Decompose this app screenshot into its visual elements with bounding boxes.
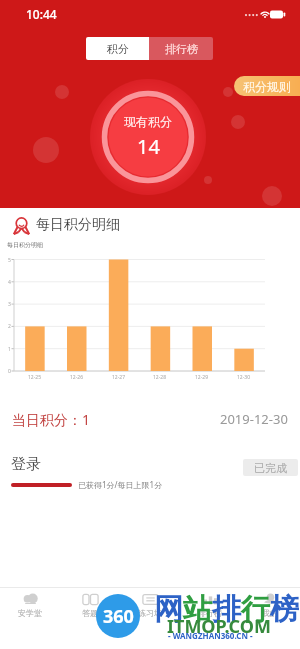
button[interactable]: 积分 [86, 37, 149, 60]
staticText: 12-26 [70, 374, 84, 381]
staticText: 榜 [270, 591, 299, 628]
staticText: 12-28 [153, 374, 167, 381]
staticText: - WANGZHAN360.CN - [168, 630, 253, 641]
staticText: 14 [137, 133, 160, 160]
staticText: ITMOP.COM [167, 614, 272, 639]
staticText: 站 [183, 591, 212, 628]
staticText: 练习场 [138, 608, 162, 618]
button[interactable]: 我的 [240, 588, 300, 649]
button[interactable]: 积分规则 [234, 76, 300, 96]
button[interactable]: 已完成 [243, 459, 298, 476]
staticText: 1 [8, 346, 11, 353]
staticText: 12-29 [195, 374, 209, 381]
staticText: 0 [8, 368, 11, 375]
staticText: 2 [8, 323, 11, 330]
staticText: 安学堂 [18, 608, 42, 618]
staticText: 答题 [82, 608, 98, 618]
staticText: 每日积分明细 [36, 216, 120, 234]
staticText: 当日积分：1 [12, 410, 91, 429]
staticText: 5 [8, 257, 11, 264]
button[interactable]: 排行榜 [149, 37, 213, 60]
staticText: 排 [212, 591, 241, 628]
staticText: 我的 [262, 608, 278, 618]
staticText: 10:44 [26, 6, 57, 22]
staticText: 12-25 [28, 374, 42, 381]
staticText: 行 [241, 591, 270, 628]
button[interactable]: 练习场 [120, 588, 180, 649]
button[interactable]: 排行榜 [180, 588, 240, 649]
staticText: 2019-12-30 [220, 410, 288, 428]
staticText: 积分规则 [243, 79, 291, 94]
staticText: 已完成 [254, 461, 287, 475]
button[interactable]: 答题 [60, 588, 120, 649]
staticText: 已获得1分/每日上限1分 [78, 479, 163, 490]
staticText: 3 [8, 301, 11, 308]
staticText: 积分 [107, 42, 129, 56]
staticText: 每日积分明细 [7, 241, 43, 249]
staticText: 网 [154, 591, 183, 628]
button[interactable]: 安学堂 [0, 588, 60, 649]
staticText: 登录 [11, 455, 41, 474]
staticText: 360 [103, 604, 134, 629]
staticText: 现有积分 [124, 114, 172, 129]
staticText: 12-30 [237, 374, 251, 381]
staticText: 排行榜 [165, 42, 198, 56]
staticText: 4 [8, 279, 11, 286]
staticText: 12-27 [112, 374, 126, 381]
staticText: 排行榜 [198, 608, 222, 618]
